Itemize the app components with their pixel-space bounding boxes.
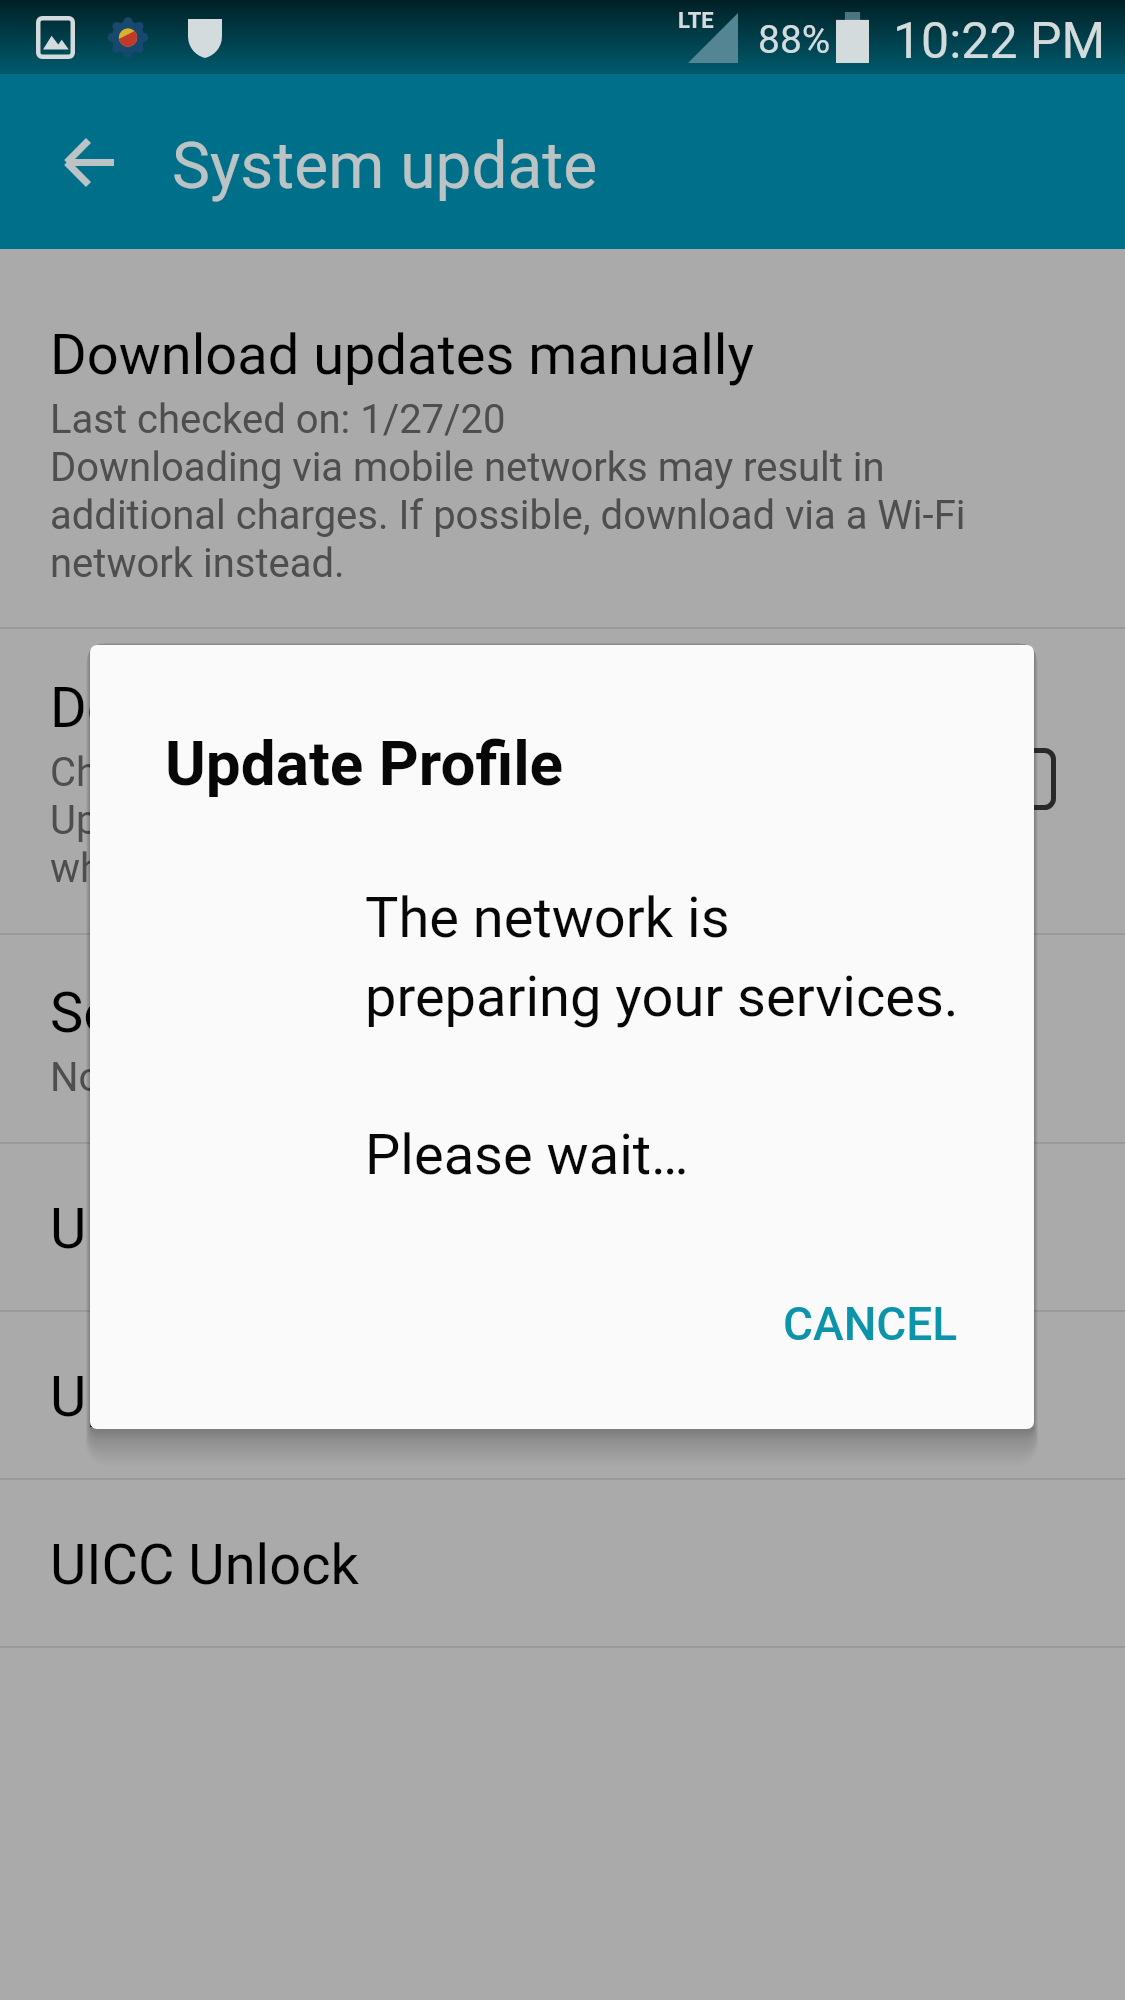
staticText: Changes the way you download data. Updat…	[50, 749, 711, 891]
staticText: 88%	[758, 17, 831, 63]
button[interactable]: Update Profile	[0, 1312, 1125, 1478]
staticText: Update Profile	[165, 727, 564, 800]
staticText: Update PRL	[50, 1196, 342, 1262]
button[interactable]: Download booster	[0, 629, 1125, 933]
staticText: LTE	[678, 8, 714, 34]
button[interactable]: Update PRL	[0, 1144, 1125, 1310]
staticText: System update	[172, 129, 598, 204]
staticText: Update Profile	[50, 1364, 402, 1430]
button[interactable]: CANCEL	[751, 1275, 990, 1373]
staticText: 10:22 PM	[893, 12, 1106, 71]
button[interactable]: Software update	[0, 935, 1125, 1142]
button[interactable]: Download updates manually	[0, 249, 1125, 627]
staticText: Last checked on: 1/27/20 Downloading via…	[50, 396, 966, 586]
staticText: The network is preparing your services. …	[365, 885, 959, 1187]
staticText: Download booster	[50, 675, 505, 741]
staticText: Software update	[50, 980, 460, 1046]
button[interactable]: Navigate up	[28, 102, 148, 222]
staticText: Download updates manually	[50, 322, 754, 388]
staticText: No update available.	[50, 1054, 412, 1101]
button[interactable]: UICC Unlock	[0, 1480, 1125, 1646]
staticText: UICC Unlock	[50, 1532, 359, 1598]
staticText: CANCEL	[783, 1297, 958, 1351]
